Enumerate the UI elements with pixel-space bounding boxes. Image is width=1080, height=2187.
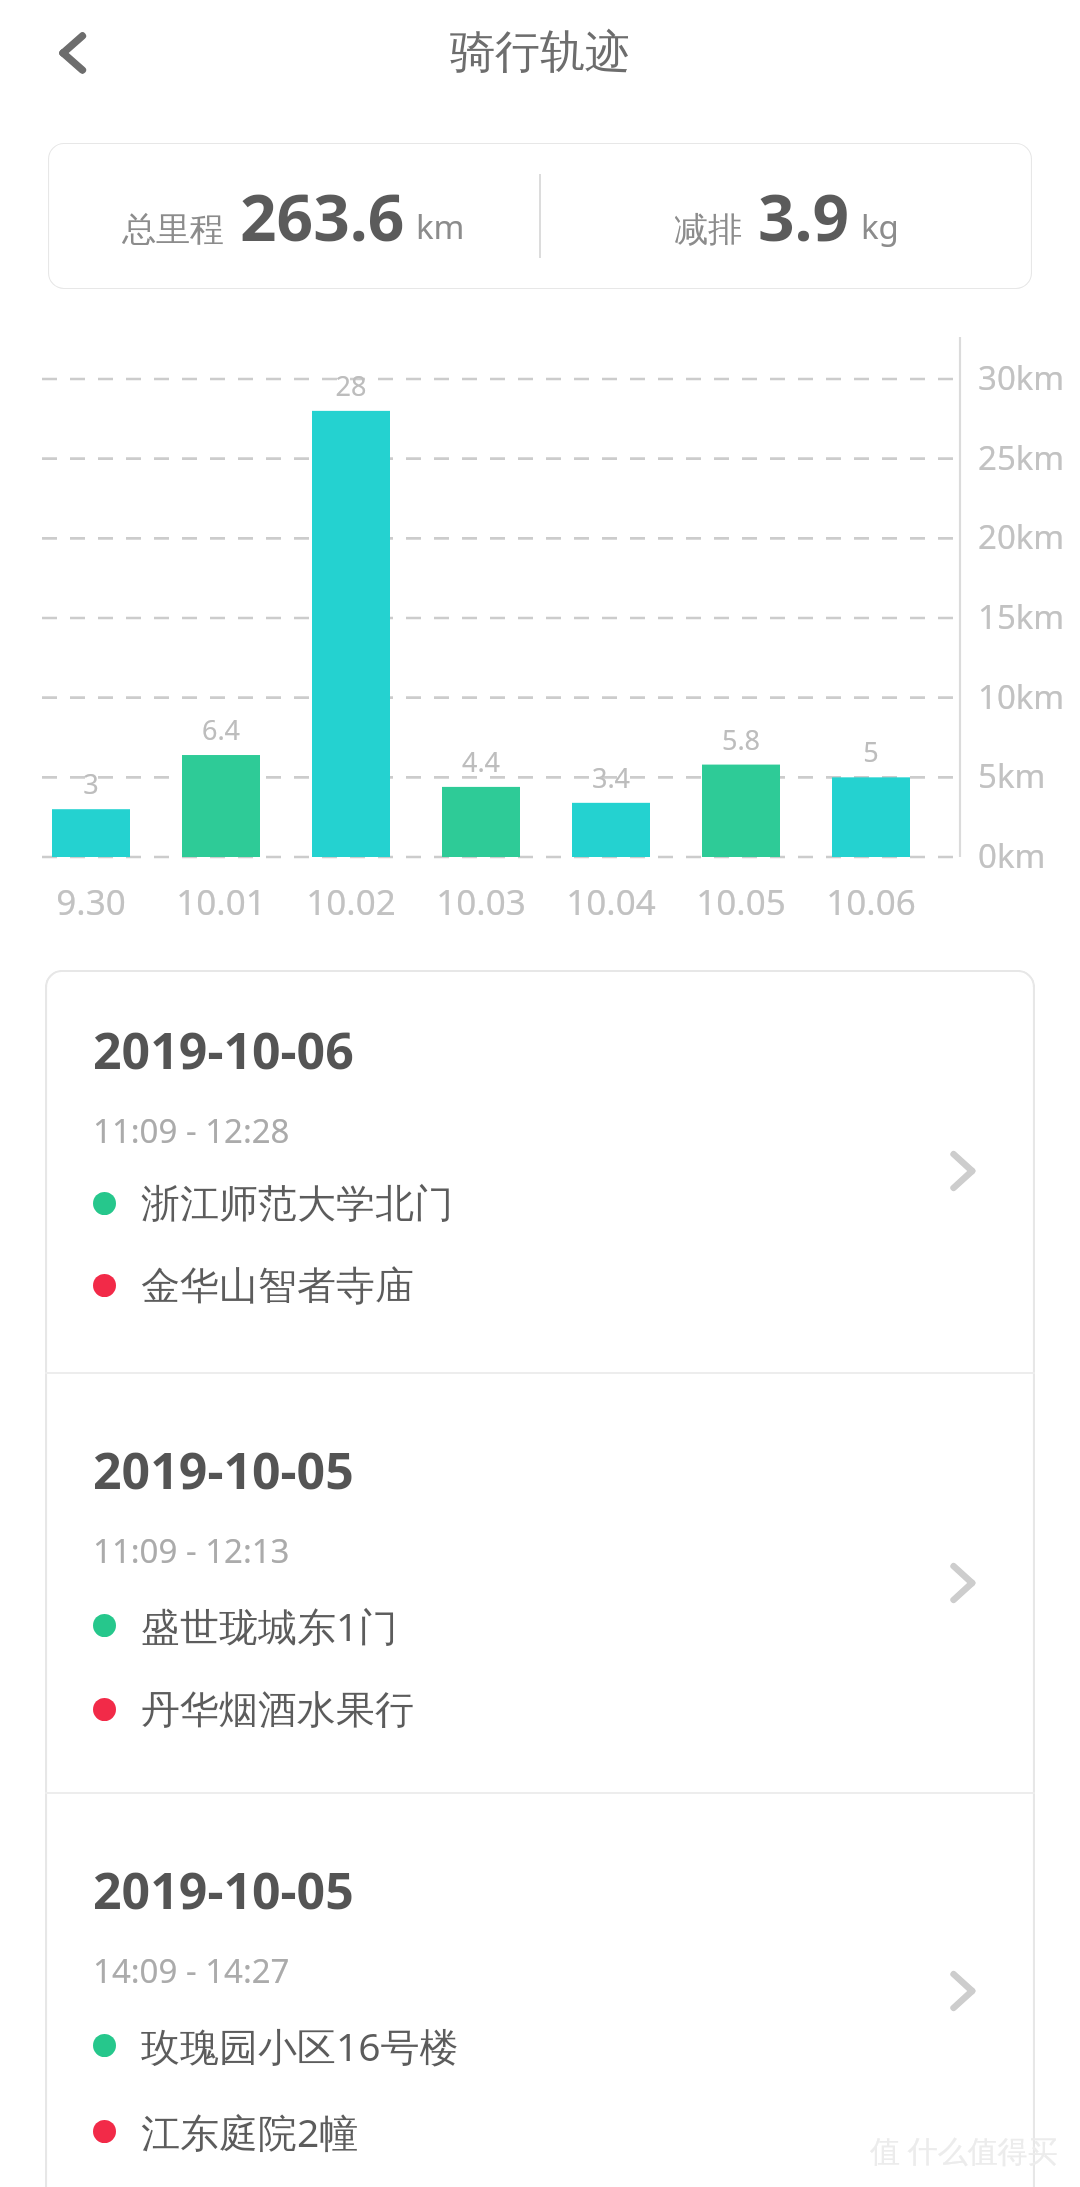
staticText: 30km [978,355,1065,400]
staticText: km [416,204,465,249]
other: View trip details [933,1142,991,1200]
staticText: 值 什么值得买 [870,2130,1058,2171]
staticText: 20km [978,514,1065,559]
staticText: 11:09 - 12:13 [93,1528,290,1573]
staticText: 2019-10-05 [93,1436,354,1504]
staticText: 6.4 [182,711,260,748]
staticText: 25km [978,435,1065,480]
button[interactable]: 总里程 [48,143,1032,289]
staticText: 总里程 [122,208,224,251]
other: View trip details [933,1962,991,2020]
staticText: 玫瑰园小区16号楼 [141,2019,459,2072]
staticText: 丹华烟酒水果行 [141,1685,414,1734]
button[interactable]: 2019-10-05 [45,1374,1035,1792]
staticText: 10km [978,674,1065,719]
staticText: 10.01 [160,878,282,926]
staticText: 3.9 [758,173,850,260]
staticText: 浙江师范大学北门 [141,1179,453,1228]
staticText: 5.8 [702,721,780,758]
staticText: 金华山智者寺庙 [141,1261,414,1310]
staticText: 5 [832,733,910,770]
staticText: 9.30 [30,878,152,926]
staticText: 11:09 - 12:28 [93,1108,290,1153]
staticText: kg [861,204,899,249]
staticText: 10.04 [550,878,672,926]
staticText: 盛世珑城东1门 [141,1599,398,1652]
staticText: 10.05 [680,878,802,926]
staticText: 10.03 [420,878,542,926]
staticText: 骑行轨迹 [450,24,630,81]
button[interactable]: 2019-10-05 [45,1794,1035,2187]
staticText: 3.4 [572,759,650,796]
staticText: 5km [978,753,1046,798]
other: View trip details [933,1554,991,1612]
staticText: 28 [312,367,390,404]
staticText: 减排 [674,208,742,251]
staticText: 0km [978,833,1046,878]
staticText: 江东庭院2幢 [141,2105,359,2158]
button[interactable]: 2019-10-06 [45,970,1035,1372]
staticText: 15km [978,594,1065,639]
staticText: 10.06 [810,878,932,926]
staticText: 14:09 - 14:27 [93,1948,290,1993]
button[interactable]: Back [28,6,122,100]
staticText: 10.02 [290,878,412,926]
staticText: 263.6 [240,173,405,260]
staticText: 3 [52,765,130,802]
staticText: 4.4 [442,743,520,780]
staticText: 2019-10-05 [93,1856,354,1924]
staticText: 2019-10-06 [93,1016,354,1084]
